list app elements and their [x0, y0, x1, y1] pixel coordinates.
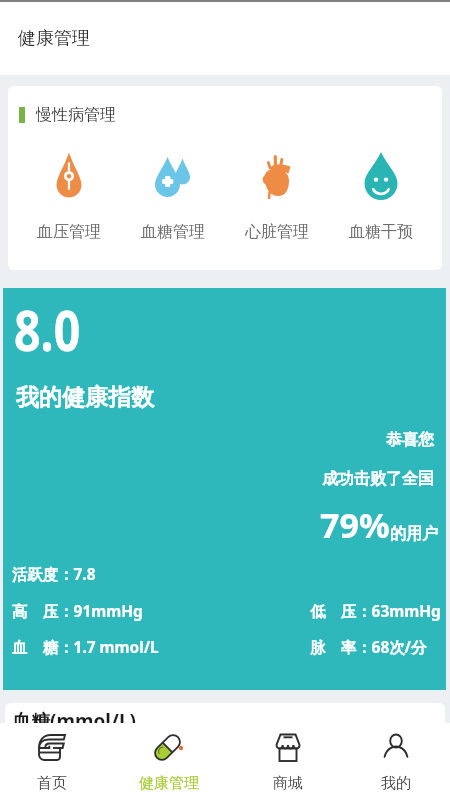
button[interactable]: 首页 [9, 723, 95, 793]
other: 健康管理 [154, 732, 184, 762]
staticText: 我的 [381, 774, 411, 793]
button[interactable]: 血糖管理 [121, 151, 225, 242]
staticText: 健康管理 [18, 27, 90, 50]
staticText: 血糖(mmol/L) [12, 708, 136, 734]
staticText: 首页 [37, 774, 67, 793]
staticText: 79% [320, 502, 390, 548]
staticText: 商城 [273, 774, 303, 793]
button[interactable]: 我的 [353, 723, 439, 793]
staticText: 血糖管理 [141, 222, 205, 242]
staticText: 脉 率：68次/分 [310, 637, 427, 658]
staticText: 活跃度：7.8 [12, 564, 96, 585]
staticText: 心脏管理 [245, 222, 309, 242]
staticText: 8.0 [14, 291, 80, 367]
staticText: 高 压：91mmHg [12, 601, 143, 622]
button[interactable]: 健康管理 [126, 723, 212, 793]
other: 我的 [381, 732, 411, 762]
staticText: 血 糖：1.7 mmol/L [12, 637, 159, 658]
button[interactable]: 血糖干预 [329, 151, 433, 242]
button[interactable]: 血压管理 [17, 151, 121, 242]
staticText: 慢性病管理 [36, 105, 116, 125]
other: 商城 [273, 732, 303, 762]
staticText: 健康管理 [139, 774, 199, 793]
staticText: 血糖干预 [349, 222, 413, 242]
staticText: 成功击败了全国 [3, 469, 434, 489]
staticText: 我的健康指数 [16, 383, 154, 412]
staticText: 的用户 [390, 524, 438, 544]
staticText: 低 压：63mmHg [310, 601, 441, 622]
button[interactable]: 商城 [245, 723, 331, 793]
staticText: 恭喜您 [3, 430, 434, 450]
other: 首页 [37, 732, 67, 762]
staticText: 血压管理 [37, 222, 101, 242]
button[interactable]: 心脏管理 [225, 151, 329, 242]
